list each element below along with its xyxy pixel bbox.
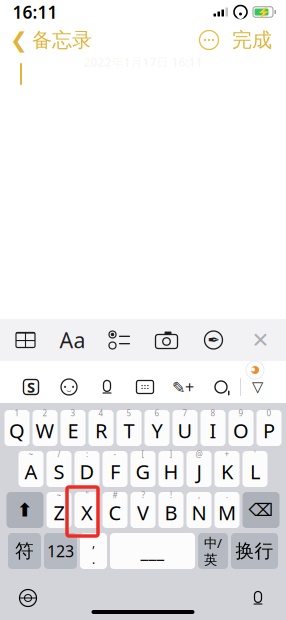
button[interactable]: 7 (172, 410, 197, 446)
staticText: . (92, 551, 95, 567)
staticText: W (35, 417, 54, 444)
staticText: 4 (98, 408, 103, 418)
staticText: B (164, 499, 177, 526)
button[interactable]: # (102, 492, 127, 528)
staticText: A (24, 458, 37, 485)
button[interactable]: ' (242, 451, 267, 487)
button[interactable]: / (46, 451, 71, 487)
button[interactable]: 换行 (231, 533, 278, 569)
staticText: - (113, 449, 116, 459)
staticText: ❮ (10, 28, 28, 52)
button[interactable]: 表情 (50, 371, 88, 403)
button[interactable]: ! (158, 492, 183, 528)
staticText: ' (254, 449, 256, 459)
button[interactable]: : (74, 451, 99, 487)
button[interactable]: 搜索 (202, 371, 240, 403)
button[interactable]: , (186, 492, 211, 528)
button[interactable]: 表格 (2, 319, 49, 361)
staticText: 7 (182, 408, 187, 418)
staticText: Y (151, 417, 162, 444)
staticText: [ (141, 449, 144, 459)
button[interactable]: 中/英 (198, 533, 228, 569)
staticText: J (196, 458, 201, 485)
staticText: X (81, 499, 93, 526)
staticText: V (137, 499, 149, 526)
button[interactable]: 2 (32, 410, 57, 446)
button[interactable]: 6 (144, 410, 169, 446)
staticText: ⬆ (17, 499, 33, 521)
button[interactable]: 0 (256, 410, 281, 446)
staticText: 1 (14, 408, 19, 418)
staticText: P (263, 417, 275, 444)
button[interactable]: 手写 (164, 371, 202, 403)
staticText: ✎+ (172, 376, 194, 398)
staticText: E (67, 417, 78, 444)
staticText: 16:11 (12, 0, 57, 23)
staticText: C (108, 499, 121, 526)
staticText: 0 (266, 408, 271, 418)
staticText: . (226, 490, 228, 500)
button[interactable]: ] (158, 451, 183, 487)
staticText: : (86, 449, 88, 459)
button[interactable]: 搜狗输入法 (12, 371, 50, 403)
staticText: 完成 (232, 28, 272, 52)
staticText: 换行 (235, 539, 273, 562)
button[interactable]: @ (186, 451, 211, 487)
button[interactable]: 1 (4, 410, 29, 446)
staticText: , (92, 535, 95, 550)
staticText: ? (141, 490, 144, 500)
staticText: ! (170, 490, 172, 500)
button[interactable]: 8 (200, 410, 225, 446)
button[interactable]: - (102, 451, 127, 487)
staticText: 6 (154, 408, 159, 418)
button[interactable]: . (214, 492, 239, 528)
staticText: N (191, 499, 206, 526)
button[interactable]: ~ (18, 451, 43, 487)
staticText: Q (9, 417, 25, 444)
staticText: 8 (210, 408, 215, 418)
button[interactable]: 3 (60, 410, 85, 446)
button[interactable]: 更多 (194, 26, 224, 54)
staticText: T (123, 417, 134, 444)
staticText: ✕ (251, 328, 269, 352)
button[interactable]: ? (130, 492, 155, 528)
staticText: # (112, 490, 117, 500)
staticText: I (209, 417, 216, 444)
staticText: O (233, 417, 249, 444)
button[interactable]: 123 (44, 533, 77, 569)
button[interactable]: 格式 (49, 319, 96, 361)
button[interactable]: 大写 (6, 492, 43, 528)
staticText: D (79, 458, 94, 485)
button[interactable]: 收起 (241, 371, 274, 403)
button[interactable]: " (74, 492, 99, 528)
button[interactable]: [ (130, 451, 155, 487)
button[interactable]: 切换键盘 (6, 580, 50, 616)
staticText: K (221, 458, 233, 485)
button[interactable]: 语音输入 (236, 580, 280, 616)
button[interactable]: ❮ (2, 22, 100, 58)
button[interactable]: 4 (88, 410, 113, 446)
staticText: , (198, 490, 200, 500)
staticText: M (218, 499, 236, 526)
button[interactable]: 关闭 (237, 319, 284, 361)
button[interactable]: 删除 (242, 492, 279, 528)
button[interactable]: 符 (8, 533, 41, 569)
staticText: ] (169, 449, 172, 459)
button[interactable]: 相机 (143, 319, 190, 361)
button[interactable]: 完成 (224, 22, 280, 58)
button[interactable]: 键盘 (126, 371, 164, 403)
button[interactable]: 9 (228, 410, 253, 446)
staticText: F (110, 458, 120, 485)
button[interactable]: 清单 (96, 319, 143, 361)
staticText: S (53, 458, 64, 485)
button[interactable]: + (214, 451, 239, 487)
staticText: + (224, 449, 229, 459)
staticText: / (57, 449, 60, 459)
button[interactable]: ~ (46, 492, 71, 528)
button[interactable]: 标点 (80, 533, 107, 569)
button[interactable]: 标记 (190, 319, 237, 361)
button[interactable]: 语音输入 (88, 371, 126, 403)
button[interactable]: 空格 (110, 533, 195, 569)
staticText: 符 (15, 539, 34, 562)
button[interactable]: 5 (116, 410, 141, 446)
